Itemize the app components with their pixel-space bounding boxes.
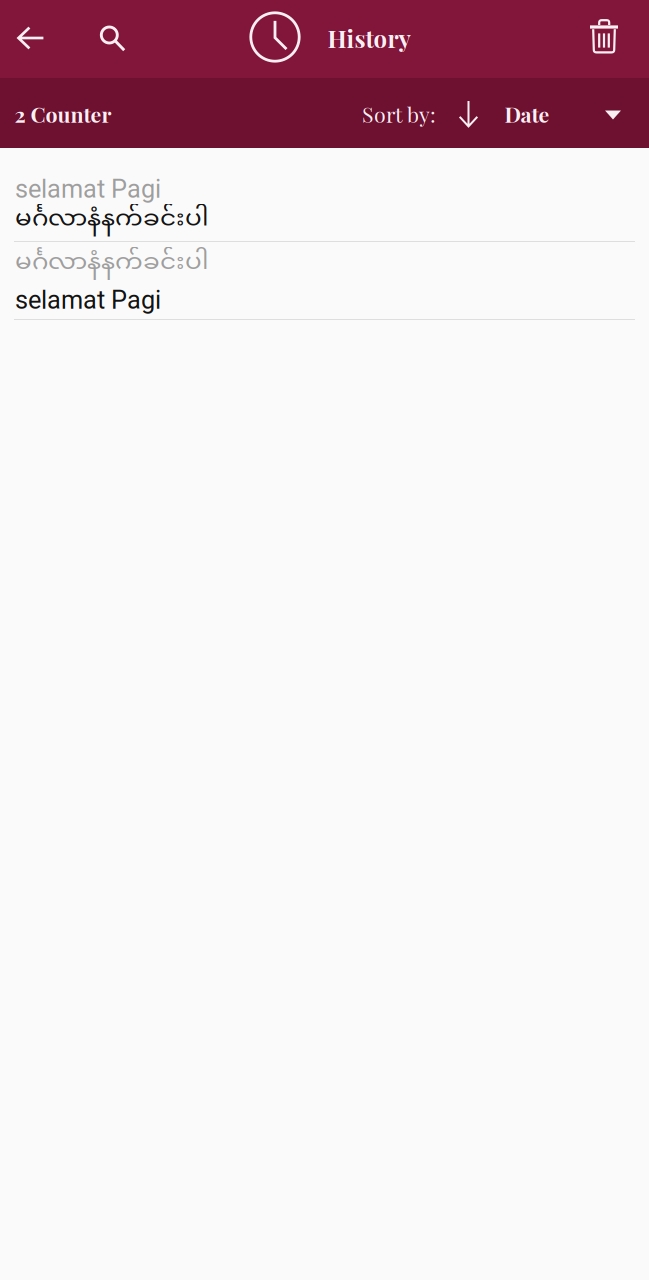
staticText: 2 Counter (14, 100, 111, 128)
staticText: History (327, 22, 410, 54)
staticText: မင်္ဂလာနံနက်ခင်းပါ (15, 247, 209, 280)
button[interactable]: Back (8, 15, 54, 61)
button[interactable]: Date (448, 91, 559, 137)
staticText: မင်္ဂလာနံနက်ခင်းပါ (15, 203, 209, 237)
button[interactable]: Delete history (580, 12, 628, 60)
button[interactable]: selamat Pagi (0, 148, 649, 242)
staticText: selamat Pagi (15, 285, 161, 315)
staticText: Sort by: (362, 100, 436, 128)
button[interactable]: Sort direction (591, 93, 635, 137)
staticText: selamat Pagi (15, 174, 161, 204)
button[interactable]: Search (89, 15, 135, 61)
staticText: Date (504, 100, 549, 128)
button[interactable]: မင်္ဂလာနံနက်ခင်းပါ (0, 242, 649, 320)
